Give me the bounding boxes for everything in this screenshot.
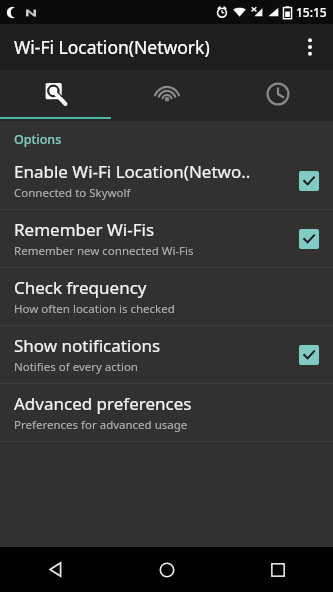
staticText: Notifies of every action xyxy=(14,359,138,375)
staticText: Show notifications xyxy=(14,334,161,357)
staticText: Advanced preferences xyxy=(14,392,192,415)
button[interactable]: Toggle Show notifications xyxy=(299,345,319,365)
button[interactable]: Check frequency xyxy=(0,268,333,325)
staticText: Preferences for advanced usage xyxy=(14,417,188,433)
staticText: Check frequency xyxy=(14,276,147,299)
button[interactable]: Show notifications xyxy=(0,326,333,383)
staticText: 15:15 xyxy=(296,4,327,20)
button[interactable]: Toggle Remember Wi-Fis xyxy=(299,229,319,249)
staticText: Connected to Skywolf xyxy=(14,185,131,201)
button[interactable]: Recent apps xyxy=(222,547,333,592)
staticText: Enable Wi-Fi Location(Netwo.. xyxy=(14,160,251,183)
button[interactable]: Settings tab xyxy=(0,70,111,117)
staticText: Options xyxy=(14,131,62,148)
button[interactable]: More options xyxy=(287,24,333,70)
staticText: Remember new connected Wi-Fis xyxy=(14,243,194,259)
button[interactable]: Enable Wi-Fi Location(Netwo.. xyxy=(0,152,333,209)
button[interactable]: Remember Wi-Fis xyxy=(0,210,333,267)
button[interactable]: Wi-Fi tab xyxy=(111,70,222,117)
button[interactable]: Back xyxy=(0,547,111,592)
button[interactable]: Toggle Enable Wi-Fi Location(Netwo.. xyxy=(299,171,319,191)
button[interactable]: Home xyxy=(111,547,222,592)
button[interactable]: History tab xyxy=(222,70,333,117)
staticText: Wi-Fi Location(Network) xyxy=(14,35,210,59)
staticText: How often location is checked xyxy=(14,301,175,317)
button[interactable]: Advanced preferences xyxy=(0,384,333,441)
staticText: Remember Wi-Fis xyxy=(14,218,155,241)
